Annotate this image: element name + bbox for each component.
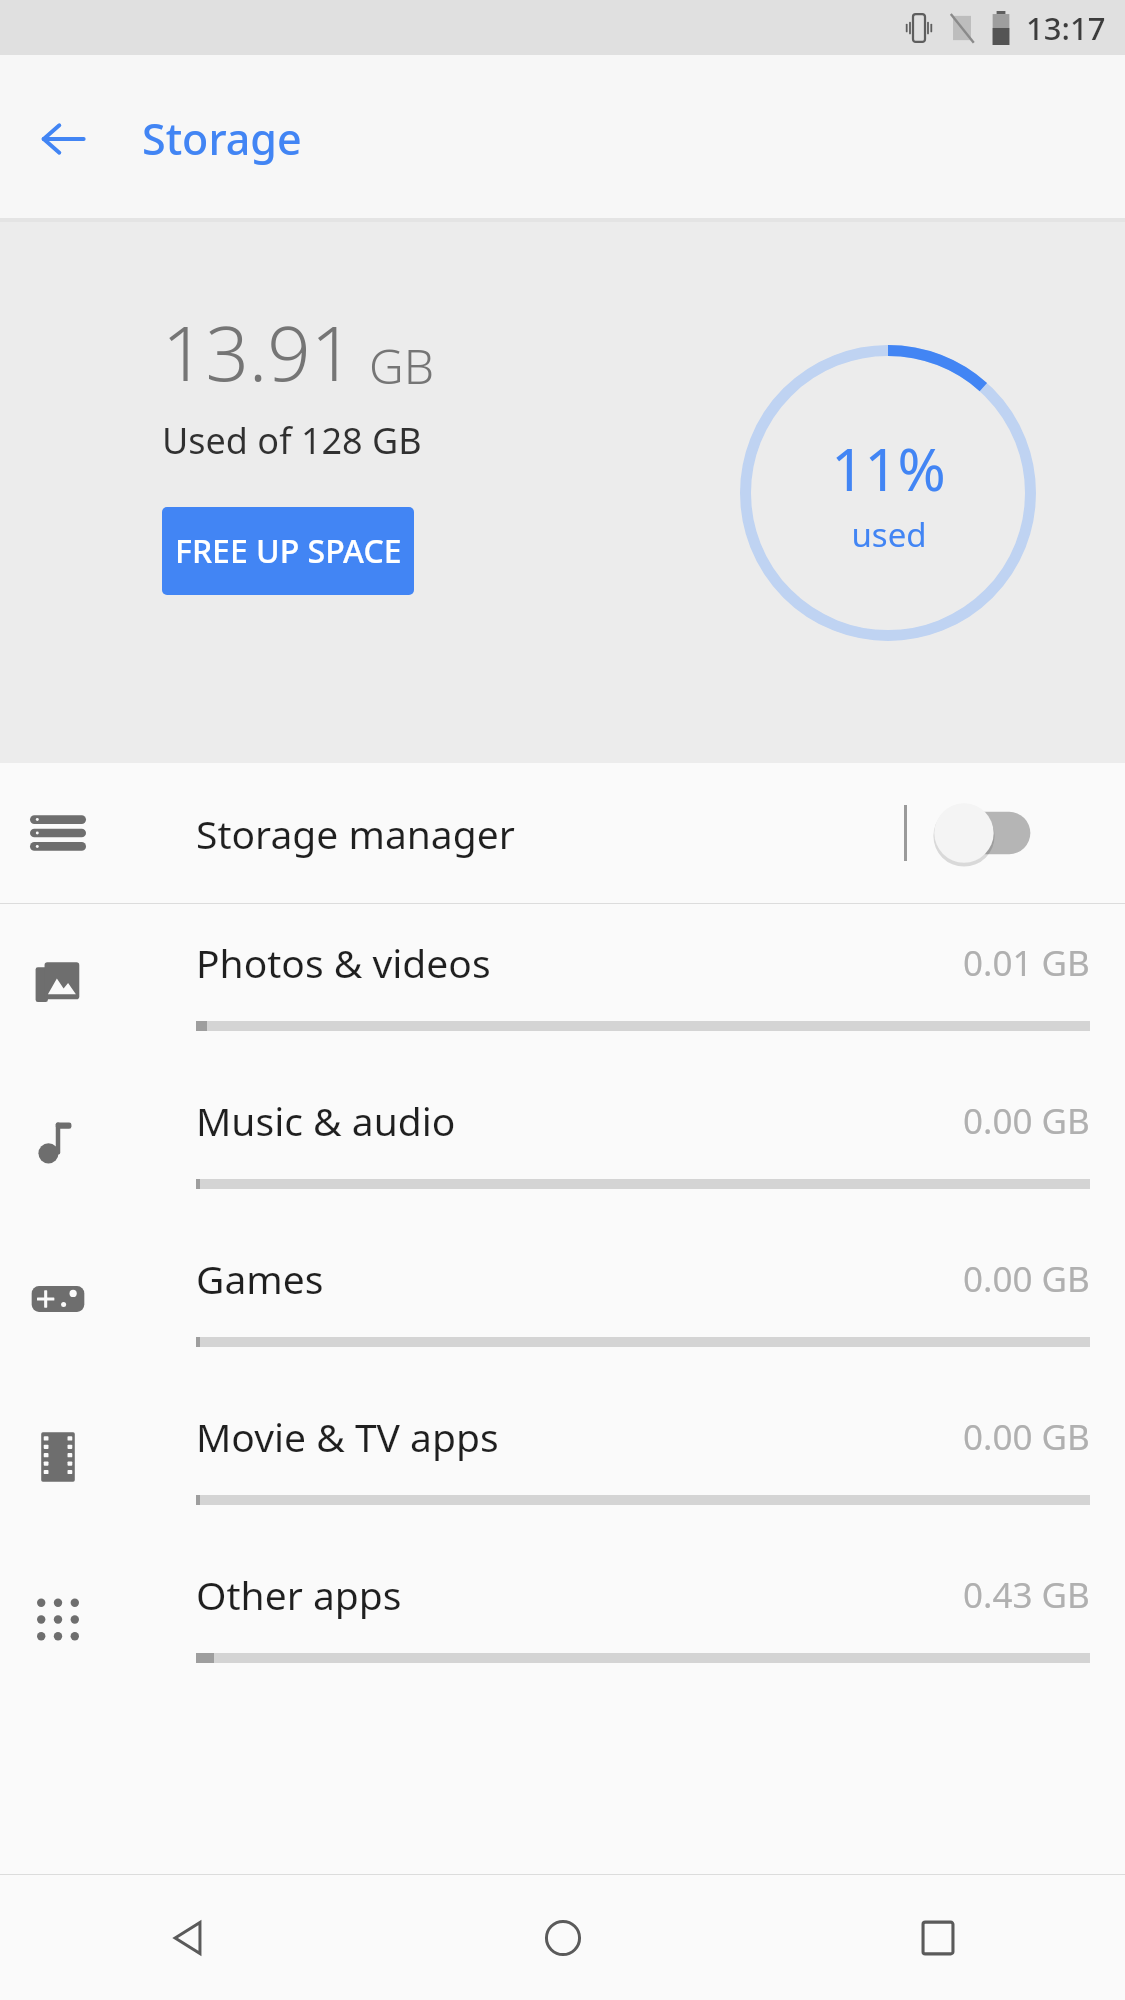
staticText: used — [851, 512, 927, 557]
button[interactable]: Storage manager — [0, 763, 1125, 903]
staticText: 13.91 — [162, 300, 355, 404]
staticText: 13:17 — [1026, 7, 1106, 49]
button[interactable]: Games — [0, 1220, 1125, 1378]
staticText: Storage — [142, 109, 302, 168]
staticText: Movie & TV apps — [196, 1410, 499, 1463]
button[interactable]: Photos & videos — [0, 904, 1125, 1062]
staticText: 11% — [831, 429, 946, 508]
button[interactable]: Recents — [750, 1875, 1125, 2000]
staticText: 0.00 GB — [963, 1413, 1090, 1461]
staticText: Storage manager — [196, 807, 515, 860]
button[interactable]: Music & audio — [0, 1062, 1125, 1220]
staticText: Music & audio — [196, 1094, 456, 1147]
staticText: FREE UP SPACE — [175, 529, 402, 573]
staticText: 0.00 GB — [963, 1255, 1090, 1303]
staticText: Photos & videos — [196, 936, 491, 989]
staticText: 0.00 GB — [963, 1097, 1090, 1145]
button[interactable] — [925, 788, 1055, 878]
button[interactable]: Back — [22, 98, 104, 180]
button[interactable]: Back — [0, 1875, 375, 2000]
button[interactable]: FREE UP SPACE — [162, 507, 414, 595]
button[interactable]: Movie & TV apps — [0, 1378, 1125, 1536]
button[interactable]: Other apps — [0, 1536, 1125, 1694]
staticText: Games — [196, 1252, 324, 1305]
staticText: 0.01 GB — [963, 939, 1090, 987]
staticText: Other apps — [196, 1568, 402, 1621]
button[interactable]: Home — [375, 1875, 750, 2000]
staticText: GB — [369, 333, 435, 398]
staticText: 0.43 GB — [963, 1571, 1090, 1619]
staticText: Used of 128 GB — [162, 416, 422, 465]
